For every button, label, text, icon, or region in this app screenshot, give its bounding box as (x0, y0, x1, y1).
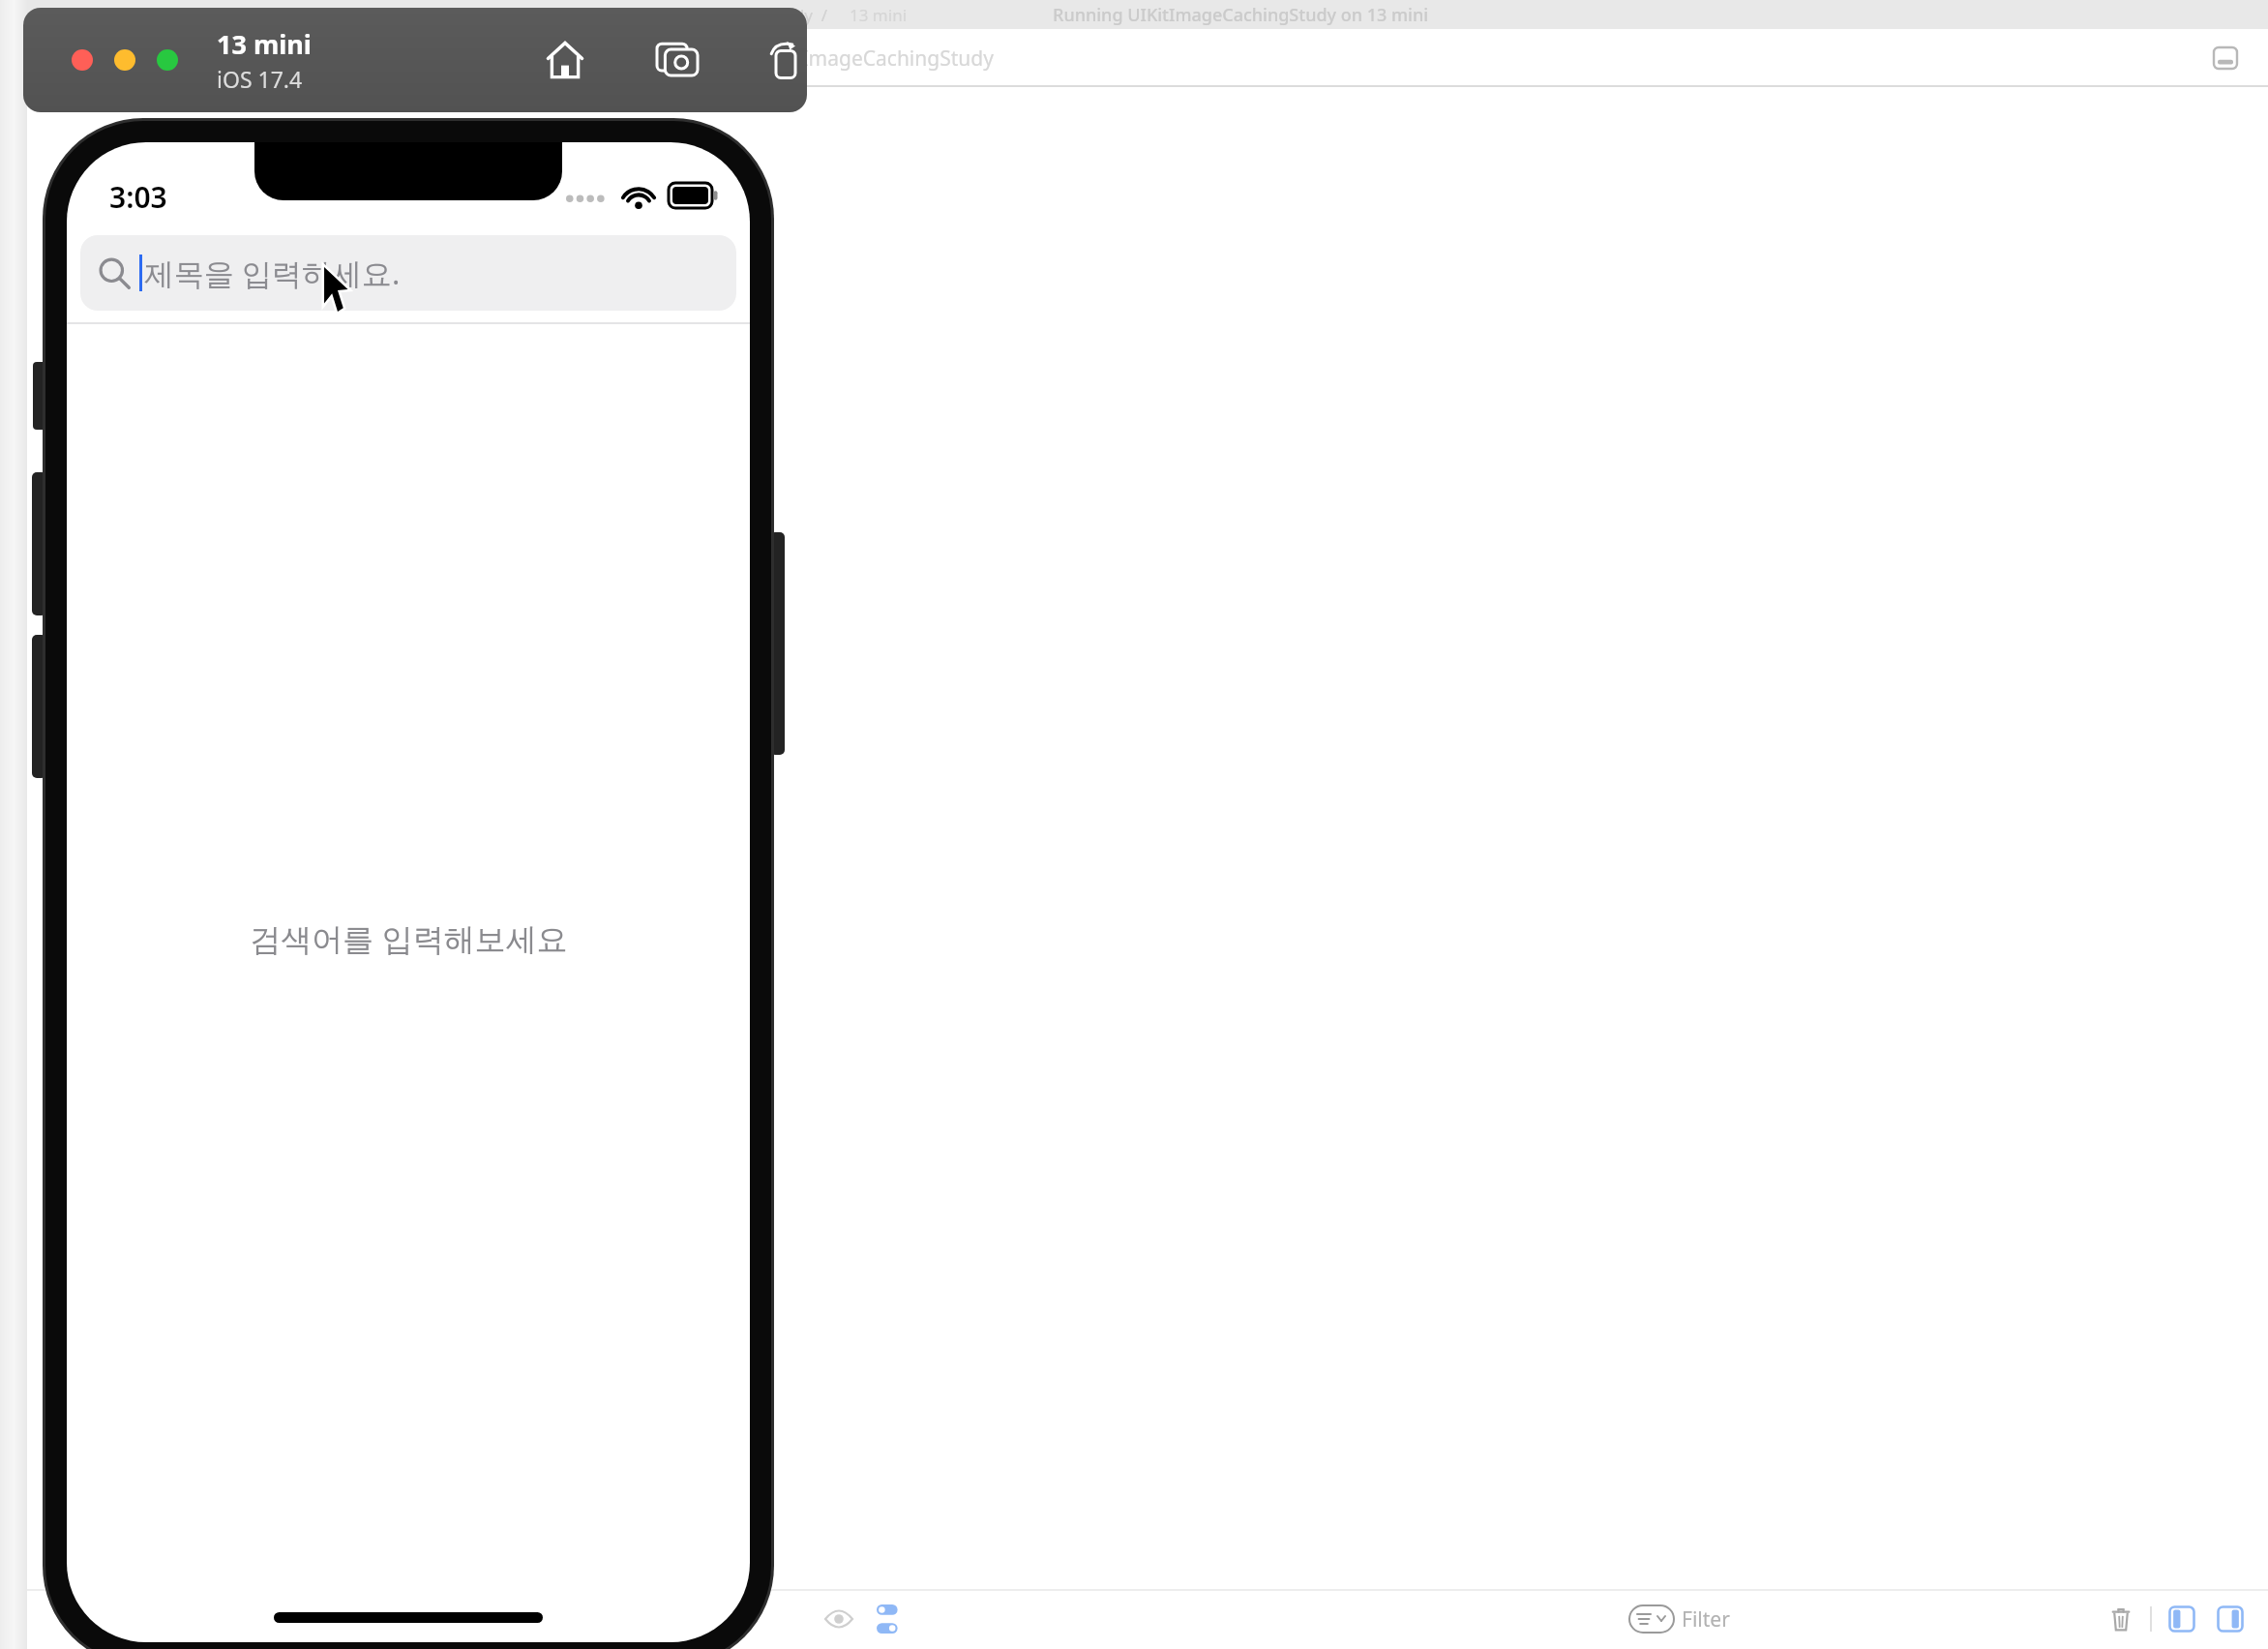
button[interactable]: Show debug preview (818, 1598, 860, 1640)
button[interactable]: Rotate (761, 31, 807, 89)
staticText: Running UIKitImageCachingStudy on 13 min… (1053, 3, 1429, 27)
button[interactable]: Volume up (32, 472, 46, 615)
button[interactable]: Toggle console (2210, 1599, 2251, 1639)
staticText: iOS 17.4 (217, 64, 303, 94)
staticText: UIKitImageCachingStudy / (619, 4, 828, 26)
staticText: 13 mini (217, 26, 312, 62)
button[interactable]: Clear console (2102, 1600, 2140, 1638)
button[interactable]: Screenshot (648, 31, 706, 89)
button[interactable]: Minimise (110, 45, 139, 75)
button[interactable]: Toggle variables view (2162, 1599, 2202, 1639)
staticText: UIKitImageCachingStudy (755, 45, 994, 73)
button[interactable]: Zoom (153, 45, 182, 75)
staticText: 제목을 입력하세요. (144, 253, 401, 293)
button[interactable]: Silent switch (33, 362, 46, 430)
staticText: 검색어를 입력해보세요 (250, 917, 568, 960)
button[interactable]: Home (536, 31, 594, 89)
staticText: 3:03 (109, 177, 167, 217)
button[interactable]: Close (68, 45, 97, 75)
staticText: 13 mini (850, 4, 908, 26)
button[interactable]: Filter (1624, 1600, 2088, 1638)
button[interactable]: Side button (770, 532, 785, 755)
staticText: Filter (1682, 1605, 1730, 1634)
button[interactable]: Debug view hierarchy (868, 1598, 910, 1640)
button[interactable]: 제목을 입력하세요. (80, 235, 736, 311)
button[interactable]: Toggle inspector (2204, 37, 2247, 79)
button[interactable]: Volume down (32, 635, 46, 778)
